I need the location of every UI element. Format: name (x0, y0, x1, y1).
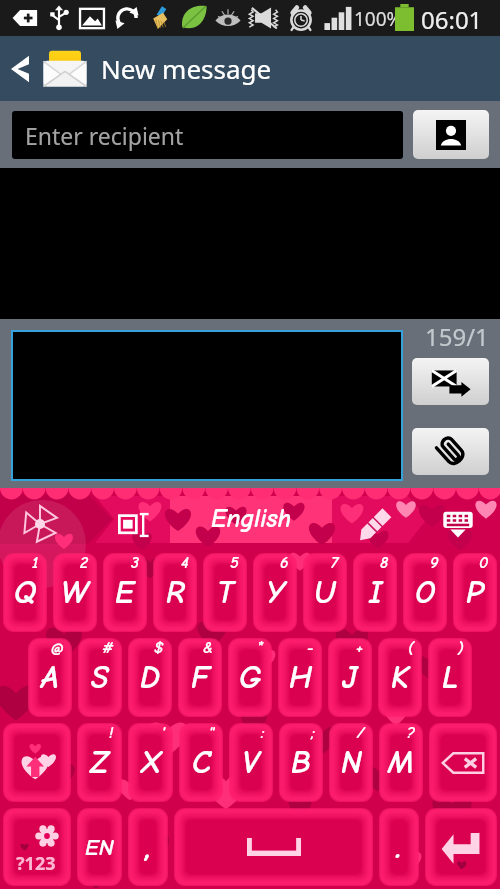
staticText: EN (85, 834, 114, 860)
button[interactable]: O (403, 553, 447, 632)
staticText: , (145, 829, 152, 866)
staticText: ; (311, 724, 315, 742)
staticText: U (314, 574, 336, 611)
staticText: 06:01 (421, 3, 483, 36)
button[interactable]: Attach (412, 428, 489, 475)
staticText: J (342, 659, 358, 696)
staticText: G (239, 659, 262, 696)
staticText: ' (162, 724, 165, 742)
button[interactable]: Space (174, 808, 373, 886)
button[interactable]: H (278, 638, 322, 717)
staticText: K (391, 659, 409, 696)
staticText: H (289, 659, 312, 696)
staticText: D (140, 659, 161, 696)
staticText: . (396, 829, 402, 866)
staticText: # (102, 639, 114, 657)
staticText: New message (101, 51, 272, 86)
button[interactable]: W (53, 553, 97, 632)
staticText: + (356, 639, 364, 657)
button[interactable]: Back (0, 36, 39, 101)
staticText: 0 (479, 554, 489, 572)
button[interactable]: Enter (425, 808, 497, 886)
staticText: 8 (380, 554, 389, 572)
staticText: 9 (430, 554, 439, 572)
button[interactable]: F (178, 638, 222, 717)
button[interactable]: Q (3, 553, 47, 632)
staticText: T (217, 574, 234, 611)
button[interactable]: M (379, 723, 423, 802)
button[interactable]: Voice input (16, 500, 64, 548)
staticText: B (291, 744, 311, 781)
staticText: ) (458, 639, 464, 657)
staticText: / (357, 724, 365, 742)
button[interactable]: S (78, 638, 122, 717)
button[interactable]: EN (77, 808, 122, 886)
button[interactable]: L (428, 638, 472, 717)
staticText: 6 (280, 554, 289, 572)
staticText: E (115, 574, 135, 611)
button[interactable]: Z (77, 723, 122, 802)
staticText: L (442, 659, 458, 696)
staticText: Z (90, 744, 109, 781)
button[interactable]: T (203, 553, 247, 632)
button[interactable]: E (103, 553, 147, 632)
staticText: Y (266, 574, 285, 611)
button[interactable]: Send message (412, 358, 489, 405)
button[interactable]: Enter recipient (12, 111, 403, 159)
staticText: X (141, 744, 161, 781)
button[interactable]: N (329, 723, 373, 802)
button[interactable]: English (170, 497, 332, 541)
staticText: ( (408, 639, 414, 657)
staticText: V (242, 744, 260, 781)
button[interactable]: Backspace (429, 723, 497, 802)
staticText: 7 (331, 554, 339, 572)
staticText: " (209, 724, 215, 742)
button[interactable]: I (353, 553, 397, 632)
button[interactable]: D (128, 638, 172, 717)
button[interactable]: Hide keyboard (434, 500, 482, 548)
staticText: M (388, 744, 414, 781)
staticText: R (166, 574, 185, 611)
button[interactable]: V (229, 723, 273, 802)
staticText: 1 (32, 554, 39, 572)
staticText: 4 (181, 554, 189, 572)
button[interactable]: Handwriting (350, 499, 400, 549)
staticText: ! (109, 724, 114, 742)
staticText: W (61, 574, 89, 611)
button[interactable]: Shift (3, 723, 71, 802)
staticText: & (203, 639, 214, 657)
staticText: * (257, 639, 264, 657)
button[interactable]: J (328, 638, 372, 717)
staticText: 100% (354, 6, 403, 32)
button[interactable]: P (453, 553, 497, 632)
staticText: S (91, 659, 109, 696)
staticText: 2 (80, 554, 89, 572)
button[interactable]: K (378, 638, 422, 717)
button[interactable]: Y (253, 553, 297, 632)
staticText: A (41, 659, 59, 696)
button[interactable]: Contacts (413, 110, 489, 159)
staticText: P (466, 574, 484, 611)
staticText: Q (14, 574, 37, 611)
button[interactable]: A (28, 638, 72, 717)
button[interactable]: U (303, 553, 347, 632)
button[interactable]: C (179, 723, 223, 802)
staticText: $ (154, 639, 164, 657)
button[interactable]: . (379, 808, 419, 886)
staticText: 5 (230, 554, 239, 572)
button[interactable]: Symbols (3, 808, 71, 886)
button[interactable]: , (128, 808, 168, 886)
staticText: : (261, 724, 265, 742)
button[interactable]: X (128, 723, 173, 802)
button[interactable]: Split keyboard (110, 500, 160, 550)
staticText: F (191, 659, 210, 696)
button[interactable]: B (279, 723, 323, 802)
staticText: - (307, 639, 314, 657)
staticText: C (192, 744, 211, 781)
staticText: 3 (131, 554, 139, 572)
staticText: I (369, 574, 382, 611)
staticText: ? (407, 724, 415, 742)
button[interactable]: R (153, 553, 197, 632)
button[interactable]: G (228, 638, 272, 717)
